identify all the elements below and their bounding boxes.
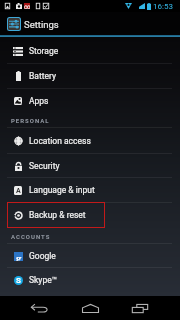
button[interactable]: Storage xyxy=(0,38,180,63)
button[interactable]: A xyxy=(0,177,180,202)
staticText: ∞ xyxy=(24,3,30,9)
button[interactable]: Apps xyxy=(0,88,180,113)
staticText: A xyxy=(16,187,21,195)
staticText: PERSONAL xyxy=(11,117,50,124)
staticText: g xyxy=(16,252,22,261)
staticText: S xyxy=(16,276,21,285)
staticText: Storage xyxy=(29,46,59,56)
button[interactable]: Recent apps xyxy=(123,296,157,320)
button[interactable]: S xyxy=(0,267,180,292)
staticText: Skype™ xyxy=(29,275,57,285)
staticText: Backup & reset xyxy=(29,210,86,220)
staticText: ACCOUNTS xyxy=(11,233,51,240)
staticText: Security xyxy=(29,161,60,171)
button[interactable]: Location access xyxy=(0,128,180,153)
button[interactable]: Security xyxy=(0,153,180,178)
button[interactable]: Home xyxy=(73,296,107,320)
staticText: Settings xyxy=(24,19,59,30)
staticText: 16:53 xyxy=(153,2,173,11)
button[interactable]: Backup & reset xyxy=(0,202,180,227)
staticText: Location access xyxy=(29,136,91,146)
button[interactable]: Battery xyxy=(0,63,180,88)
button[interactable]: g xyxy=(0,243,180,268)
staticText: Google xyxy=(29,251,56,261)
staticText: Battery xyxy=(29,71,56,81)
staticText: Apps xyxy=(29,96,49,106)
staticText: Language & input xyxy=(29,185,95,195)
button[interactable]: Back xyxy=(22,296,56,320)
